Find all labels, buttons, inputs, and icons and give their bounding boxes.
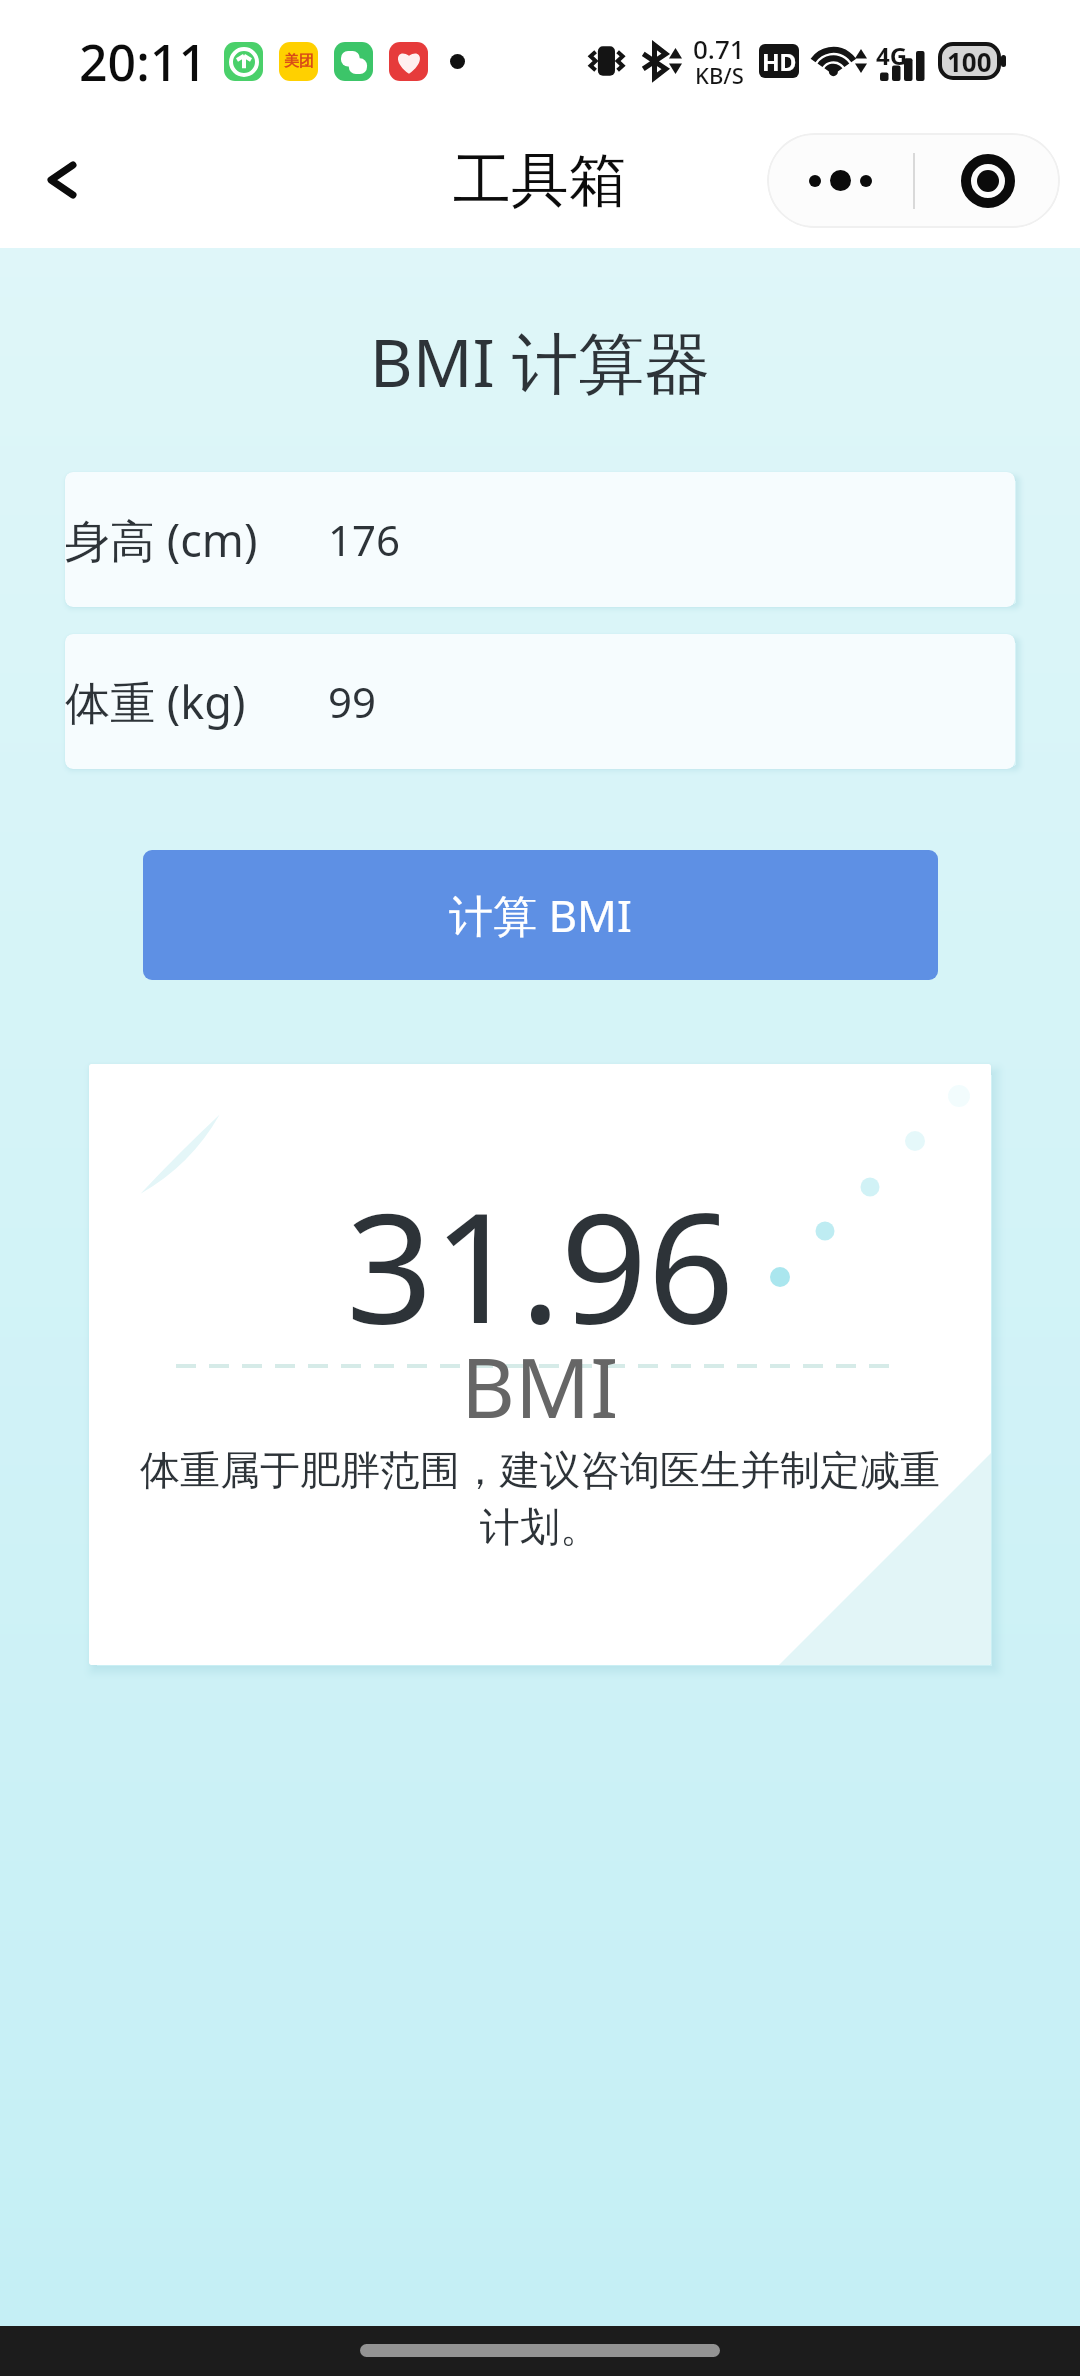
- button[interactable]: More options: [767, 133, 913, 228]
- staticText: 工具箱: [453, 144, 627, 217]
- staticText: 体重 (kg): [65, 671, 246, 732]
- staticText: 31.96: [346, 1161, 735, 1368]
- staticText: 体重属于肥胖范围，建议咨询医生并制定减重 计划。: [140, 1445, 940, 1553]
- staticText: 0.71: [693, 31, 745, 66]
- staticText: BMI: [461, 1329, 619, 1442]
- staticText: 4G: [876, 39, 908, 72]
- staticText: 身高 (cm): [65, 509, 258, 570]
- button[interactable]: 体重 (kg): [65, 634, 1015, 769]
- staticText: 美团: [284, 52, 314, 71]
- staticText: BMI 计算器: [0, 316, 1080, 406]
- button[interactable]: Close mini program: [915, 133, 1060, 228]
- staticText: 计算 BMI: [449, 885, 632, 945]
- staticText: 20:11: [79, 28, 207, 96]
- staticText: KB/S: [695, 60, 744, 90]
- staticText: HD: [762, 46, 797, 77]
- button[interactable]: 身高 (cm): [65, 472, 1015, 607]
- staticText: 99: [328, 673, 377, 730]
- staticText: 176: [328, 511, 401, 568]
- button[interactable]: 计算 BMI: [143, 850, 938, 980]
- staticText: 100: [947, 44, 992, 79]
- button[interactable]: Back: [12, 132, 108, 228]
